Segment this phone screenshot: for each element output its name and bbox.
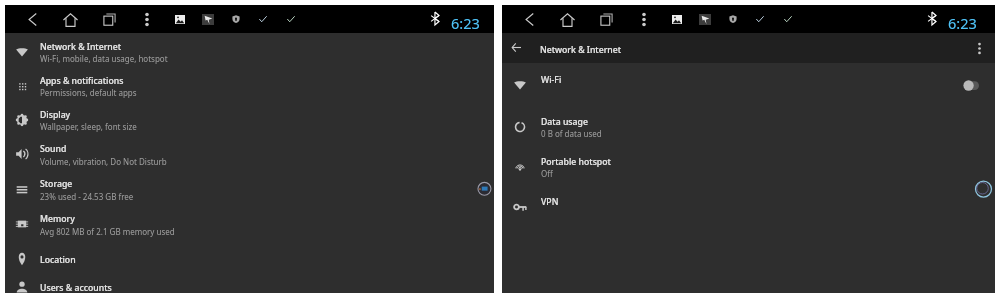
button[interactable]: Wi-Fi on/off toggle [953, 73, 987, 97]
button[interactable]: Users & accounts [5, 270, 494, 298]
button[interactable]: Portable hotspot [502, 148, 995, 188]
button[interactable]: Home [60, 10, 80, 30]
staticText: Wi-Fi, mobile, data usage, hotspot [40, 53, 168, 64]
staticText: Memory [40, 213, 75, 225]
staticText: 6:23 [451, 13, 480, 33]
staticText: Portable hotspot [541, 156, 611, 168]
button[interactable]: Back [519, 9, 539, 29]
button[interactable]: Display [5, 103, 494, 137]
button[interactable]: VPN [502, 187, 995, 227]
staticText: VPN [541, 196, 559, 208]
button[interactable]: Location [5, 242, 494, 276]
button[interactable]: Apps & notifications [5, 69, 494, 103]
button[interactable]: Data usage [502, 107, 995, 147]
staticText: 6:23 [948, 13, 977, 33]
staticText: Permissions, default apps [40, 87, 137, 98]
button[interactable]: Verified 2 [281, 9, 301, 29]
button[interactable]: Memory [5, 207, 494, 241]
button[interactable]: Verified [750, 9, 770, 29]
button[interactable]: More options [970, 38, 988, 58]
button[interactable]: Sound [5, 137, 494, 171]
staticText: Users & accounts [40, 282, 112, 294]
staticText: Data usage [541, 116, 588, 128]
staticText: 0 B of data used [541, 128, 602, 139]
staticText: Avg 802 MB of 2.1 GB memory used [40, 226, 175, 237]
staticText: Display [40, 109, 71, 121]
staticText: 23% used - 24.53 GB free [40, 191, 134, 202]
button[interactable]: Verified 2 [778, 9, 798, 29]
button[interactable]: Storage [5, 172, 494, 206]
staticText: Storage [40, 178, 73, 190]
button[interactable]: More options [634, 9, 654, 29]
button[interactable]: Wi-Fi [502, 65, 995, 105]
button[interactable]: Back [22, 9, 42, 29]
staticText: Apps & notifications [40, 75, 124, 87]
button[interactable]: Recents [99, 9, 119, 29]
button[interactable]: Pointer [198, 9, 218, 29]
staticText: Volume, vibration, Do Not Disturb [40, 156, 167, 167]
staticText: Off [541, 168, 553, 179]
staticText: Location [40, 254, 76, 266]
staticText: Wi-Fi [541, 74, 562, 86]
button[interactable]: Navigate up [506, 37, 526, 57]
button[interactable]: Pointer [695, 9, 715, 29]
button[interactable]: Recents [596, 9, 616, 29]
button[interactable]: Home [557, 10, 577, 30]
button[interactable]: Network & Internet [5, 35, 494, 69]
staticText: Sound [40, 143, 67, 155]
button[interactable]: More options [137, 9, 157, 29]
button[interactable]: Screenshot [170, 9, 190, 29]
button[interactable]: Screenshot [667, 9, 687, 29]
staticText: Wallpaper, sleep, font size [40, 121, 137, 132]
button[interactable]: Security [226, 9, 246, 29]
staticText: Network & Internet [40, 41, 122, 53]
button[interactable]: Security [723, 9, 743, 29]
staticText: Network & Internet [540, 44, 622, 56]
button[interactable]: Verified [253, 9, 273, 29]
